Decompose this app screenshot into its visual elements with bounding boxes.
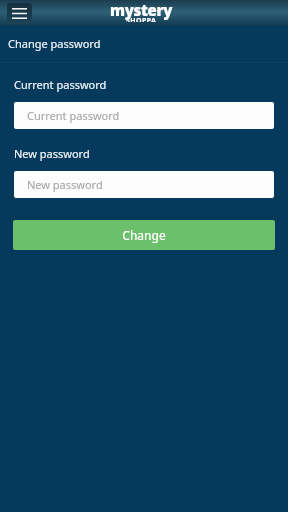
staticText: SHOPPA (126, 16, 157, 22)
staticText: New password (14, 146, 90, 161)
button[interactable]: Current password (14, 102, 274, 129)
staticText: Current password (14, 77, 107, 92)
staticText: Current password (27, 108, 120, 123)
staticText: mystery (110, 0, 173, 20)
staticText: New password (27, 177, 103, 192)
staticText: Change (122, 227, 166, 243)
staticText: Change password (8, 36, 101, 51)
button[interactable]: Change (13, 220, 275, 250)
button[interactable]: Open navigation menu (7, 3, 32, 24)
button[interactable]: New password (14, 171, 274, 198)
